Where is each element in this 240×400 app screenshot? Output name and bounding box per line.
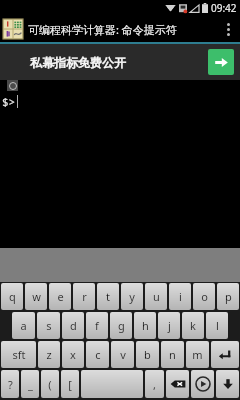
- staticText: u: [153, 289, 160, 304]
- staticText: v: [120, 347, 126, 362]
- staticText: c: [95, 347, 101, 362]
- button[interactable]: d: [62, 312, 84, 339]
- staticText: q: [9, 289, 16, 304]
- staticText: 私幕指标免费公开: [30, 55, 126, 70]
- staticText: i: [179, 289, 182, 304]
- button[interactable]: w: [25, 283, 47, 310]
- button[interactable]: ,: [145, 370, 164, 398]
- staticText: b: [144, 347, 151, 362]
- button[interactable]: f: [86, 312, 108, 339]
- staticText: z: [46, 347, 52, 362]
- staticText: _: [28, 377, 33, 392]
- staticText: j: [168, 318, 171, 333]
- button[interactable]: g: [110, 312, 132, 339]
- staticText: g: [118, 318, 125, 333]
- staticText: ,: [153, 377, 156, 392]
- staticText: 09:42: [211, 1, 237, 15]
- button[interactable]: (: [41, 370, 59, 398]
- button[interactable]: v: [111, 341, 134, 368]
- staticText: r: [82, 289, 87, 304]
- staticText: y: [129, 289, 135, 304]
- staticText: d: [70, 318, 77, 333]
- button[interactable]: _: [21, 370, 39, 398]
- button[interactable]: [: [61, 370, 79, 398]
- button[interactable]: e: [49, 283, 71, 310]
- staticText: k: [190, 318, 196, 333]
- button[interactable]: More options: [219, 17, 237, 41]
- button[interactable]: h: [134, 312, 156, 339]
- button[interactable]: z: [38, 341, 60, 368]
- staticText: h: [142, 318, 149, 333]
- button[interactable]: ?: [1, 370, 19, 398]
- staticText: t: [106, 289, 110, 304]
- button[interactable]: x: [62, 341, 84, 368]
- staticText: sft: [12, 347, 26, 362]
- staticText: $>: [2, 94, 16, 109]
- button[interactable]: s: [37, 312, 60, 339]
- button[interactable]: Run: [191, 370, 214, 398]
- button[interactable]: a: [12, 312, 35, 339]
- staticText: n: [169, 347, 176, 362]
- staticText: [: [68, 377, 72, 392]
- button[interactable]: m: [186, 341, 209, 368]
- staticText: e: [57, 289, 64, 304]
- staticText: s: [46, 318, 52, 333]
- button[interactable]: Backspace: [166, 370, 189, 398]
- button[interactable]: r: [73, 283, 95, 310]
- button[interactable]: k: [182, 312, 204, 339]
- staticText: a: [20, 318, 27, 333]
- button[interactable]: i: [169, 283, 191, 310]
- staticText: 可编程科学计算器: 命令提示符: [28, 22, 177, 37]
- staticText: x: [70, 347, 76, 362]
- staticText: l: [216, 318, 219, 333]
- button[interactable]: u: [145, 283, 167, 310]
- button[interactable]: Hide keyboard: [216, 370, 239, 398]
- button[interactable]: t: [97, 283, 119, 310]
- button[interactable]: n: [161, 341, 184, 368]
- button[interactable]: p: [217, 283, 239, 310]
- button[interactable]: o: [193, 283, 215, 310]
- button[interactable]: b: [136, 341, 159, 368]
- staticText: f: [95, 318, 99, 333]
- staticText: m: [192, 347, 203, 362]
- staticText: (: [48, 377, 52, 392]
- staticText: o: [201, 289, 208, 304]
- button[interactable]: q: [1, 283, 23, 310]
- button[interactable]: 私幕指标免费公开: [0, 44, 240, 80]
- button[interactable]: j: [158, 312, 180, 339]
- button[interactable]: Open ad: [208, 49, 234, 75]
- staticText: w: [32, 289, 41, 304]
- staticText: ?: [8, 377, 13, 392]
- button[interactable]: c: [86, 341, 109, 368]
- staticText: p: [225, 289, 232, 304]
- button[interactable]: sft: [1, 341, 36, 368]
- button[interactable]: y: [121, 283, 143, 310]
- button[interactable]: Space: [81, 370, 143, 398]
- button[interactable]: Enter: [211, 341, 239, 368]
- button[interactable]: l: [206, 312, 228, 339]
- button[interactable]: Ad info: [7, 80, 18, 91]
